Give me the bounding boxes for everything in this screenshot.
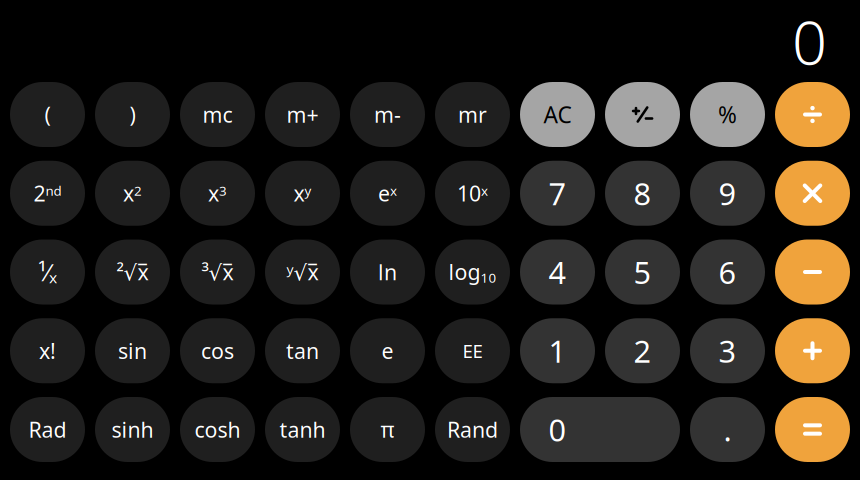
staticText: ln — [378, 258, 397, 286]
button[interactable]: x2 — [95, 161, 170, 226]
button[interactable]: log10 — [435, 239, 510, 304]
staticText: Rad — [28, 415, 66, 444]
button[interactable]: mc — [180, 82, 255, 147]
staticText: mr — [458, 100, 487, 129]
staticText: m+ — [286, 100, 318, 129]
button[interactable]: 2 — [605, 318, 680, 383]
button[interactable]: Rand — [435, 397, 510, 462]
staticText: ex — [378, 179, 397, 207]
button[interactable]: sinh — [95, 397, 170, 462]
staticText: log10 — [448, 258, 496, 286]
button[interactable]: ²√x̅ — [95, 239, 170, 304]
staticText: tan — [286, 337, 319, 365]
button[interactable]: ʸ√x̅ — [265, 239, 340, 304]
staticText: sin — [118, 337, 147, 365]
staticText: ( — [44, 100, 50, 129]
staticText: π — [380, 415, 394, 444]
button[interactable]: tanh — [265, 397, 340, 462]
button[interactable]: % — [690, 82, 765, 147]
button[interactable]: ¹⁄ₓ — [10, 239, 85, 304]
button[interactable]: 0 — [520, 397, 680, 462]
button[interactable]: ( — [10, 82, 85, 147]
button[interactable]: tan — [265, 318, 340, 383]
staticText: 4 — [548, 252, 566, 292]
staticText: ¹⁄ₓ — [38, 256, 57, 288]
button[interactable]: e — [350, 318, 425, 383]
staticText: 1 — [548, 330, 566, 371]
button[interactable]: Rad — [10, 397, 85, 462]
button[interactable]: 9 — [690, 161, 765, 226]
button[interactable]: 7 — [520, 161, 595, 226]
button[interactable]: x! — [10, 318, 85, 383]
button[interactable]: 5 — [605, 239, 680, 304]
staticText: x! — [39, 337, 56, 365]
button[interactable]: Divide — [775, 82, 850, 147]
button[interactable]: ln — [350, 239, 425, 304]
button[interactable]: Add — [775, 318, 850, 383]
button[interactable]: 3 — [690, 318, 765, 383]
staticText: . — [723, 409, 731, 450]
staticText: EE — [462, 338, 482, 363]
staticText: 2nd — [33, 179, 61, 207]
staticText: % — [718, 99, 737, 129]
button[interactable]: 6 — [690, 239, 765, 304]
staticText: 3 — [718, 330, 736, 371]
staticText: xy — [293, 179, 311, 207]
staticText: ) — [129, 100, 135, 129]
button[interactable]: xy — [265, 161, 340, 226]
staticText: 0 — [548, 409, 566, 450]
staticText: cosh — [194, 415, 240, 444]
staticText: ²√x̅ — [116, 258, 148, 286]
staticText: 9 — [718, 173, 736, 214]
button[interactable]: EE — [435, 318, 510, 383]
staticText: ³√x̅ — [201, 258, 233, 286]
staticText: tanh — [279, 415, 325, 444]
staticText: AC — [543, 99, 571, 129]
staticText: m- — [374, 100, 401, 129]
button[interactable]: 8 — [605, 161, 680, 226]
staticText: mc — [202, 100, 232, 129]
button[interactable]: x3 — [180, 161, 255, 226]
staticText: 0 — [792, 0, 827, 82]
staticText: 7 — [548, 173, 566, 214]
staticText: ʸ√x̅ — [286, 258, 318, 286]
button[interactable]: 2nd — [10, 161, 85, 226]
button[interactable]: AC — [520, 82, 595, 147]
button[interactable]: ³√x̅ — [180, 239, 255, 304]
staticText: 8 — [633, 173, 651, 214]
button[interactable]: 1 — [520, 318, 595, 383]
staticText: Rand — [447, 415, 498, 444]
button[interactable]: ) — [95, 82, 170, 147]
button[interactable]: m+ — [265, 82, 340, 147]
button[interactable]: cos — [180, 318, 255, 383]
staticText: x3 — [208, 179, 227, 207]
button[interactable]: mr — [435, 82, 510, 147]
staticText: x2 — [123, 179, 142, 207]
button[interactable]: . — [690, 397, 765, 462]
staticText: 5 — [633, 252, 651, 292]
staticText: cos — [201, 337, 234, 365]
staticText: 2 — [633, 330, 651, 371]
button[interactable]: Plus Minus — [605, 82, 680, 147]
staticText: 10x — [457, 179, 488, 207]
button[interactable]: 10x — [435, 161, 510, 226]
button[interactable]: Equals — [775, 397, 850, 462]
button[interactable]: m- — [350, 82, 425, 147]
button[interactable]: sin — [95, 318, 170, 383]
button[interactable]: ex — [350, 161, 425, 226]
staticText: sinh — [111, 415, 153, 444]
button[interactable]: Subtract — [775, 239, 850, 304]
staticText: e — [381, 337, 393, 365]
button[interactable]: 4 — [520, 239, 595, 304]
button[interactable]: cosh — [180, 397, 255, 462]
staticText: 6 — [718, 252, 736, 292]
button[interactable]: π — [350, 397, 425, 462]
button[interactable]: Multiply — [775, 161, 850, 226]
